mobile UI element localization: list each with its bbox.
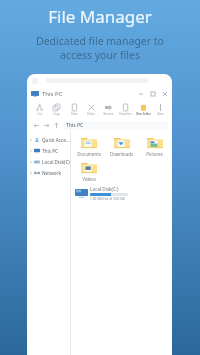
button[interactable]: Quick Acce... [29,134,70,145]
staticText: Downloads [110,151,133,157]
button[interactable]: Up [51,120,61,130]
staticText: Delete [87,112,95,116]
button[interactable]: Delete [83,101,99,119]
staticText: Copy [53,112,60,116]
staticText: More [157,112,164,116]
button[interactable]: Minimize [135,88,147,100]
staticText: Paste [71,112,78,116]
staticText: Quick Acce... [42,137,70,143]
button[interactable]: Network [29,167,70,178]
staticText: Properties [119,112,132,116]
button[interactable]: Paste [66,101,82,119]
button[interactable]: Local Disk(C:) [75,186,169,201]
staticText: This PC [66,122,84,129]
button[interactable]: Back [31,120,41,130]
button[interactable]: Downloads [107,135,136,157]
button[interactable]: Maximize [147,88,159,100]
button[interactable]: This PC [63,121,168,130]
button[interactable]: Properties [117,101,133,119]
staticText: 1.00 GB free of 10.0 GB [90,197,125,201]
staticText: Videos [82,176,96,182]
staticText: Local Disk(C) [42,159,70,165]
staticText: New Folder [136,112,151,116]
staticText: Local Disk(C:) [90,186,119,192]
staticText: This PC [42,148,58,154]
staticText: Network [42,170,61,176]
staticText: File Manager [48,5,152,28]
button[interactable]: Videos [75,160,103,182]
button[interactable]: Copy [48,101,64,119]
staticText: Dedicated file manager to access your fi… [36,34,164,62]
button[interactable]: Close [159,88,171,100]
staticText: This PC [42,90,63,98]
staticText: Documents [77,151,101,157]
staticText: Pictures [146,151,163,157]
button[interactable]: Forward [41,120,51,130]
button[interactable]: Rename [100,101,116,119]
button[interactable]: More [152,101,168,119]
button[interactable]: Documents [75,135,103,157]
button[interactable]: Local Disk(C) [29,156,70,167]
button[interactable]: Pictures [140,135,169,157]
button[interactable]: This PC [29,145,70,156]
staticText: Rename [103,112,114,116]
button[interactable]: New Folder [135,101,151,119]
staticText: Cut [37,112,42,116]
button[interactable]: Cut [31,101,47,119]
